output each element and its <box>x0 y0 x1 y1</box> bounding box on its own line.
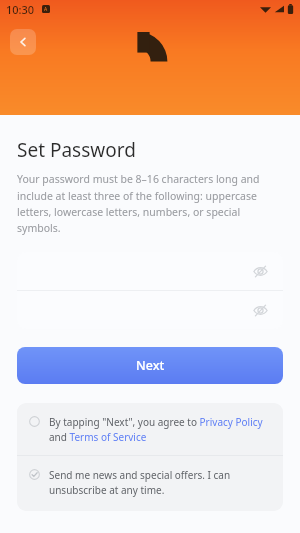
staticText: Your password must be 8–16 characters lo… <box>17 172 283 235</box>
staticText: 10:30 <box>6 2 35 17</box>
button[interactable]: Show password <box>250 300 270 320</box>
button[interactable]: Back <box>10 29 36 55</box>
button[interactable]: Show password <box>250 261 270 281</box>
staticText: Send me news and special offers. I can u… <box>49 468 269 497</box>
staticText: A <box>44 6 48 13</box>
button[interactable]: Next <box>17 347 283 384</box>
button[interactable]: By tapping "Next", you agree to Privacy … <box>17 403 283 455</box>
staticText: By tapping "Next", you agree to Privacy … <box>49 415 269 444</box>
staticText: Set Password <box>17 137 136 163</box>
button[interactable]: Send me news and special offers. I can u… <box>17 456 283 511</box>
staticText: Next <box>136 357 165 374</box>
